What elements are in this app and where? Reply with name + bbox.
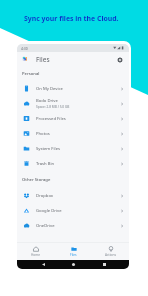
staticText: Photos	[36, 131, 50, 137]
staticText: Actions	[105, 253, 116, 257]
button[interactable]: Trash Bin	[17, 156, 129, 171]
staticText: Files	[36, 55, 50, 64]
button[interactable]: Settings	[115, 55, 124, 64]
staticText: OneDrive	[36, 223, 55, 229]
staticText: Processed Files	[36, 116, 66, 122]
staticText: Other Storage	[22, 177, 51, 183]
staticText: System Files	[36, 146, 61, 152]
staticText: Google Drive	[36, 208, 62, 214]
button[interactable]: Bodo Drive	[17, 96, 129, 111]
button[interactable]: Dropbox	[17, 188, 129, 203]
button[interactable]: OneDrive	[17, 218, 129, 233]
staticText: On My Device	[36, 86, 63, 92]
button[interactable]: Recent apps	[99, 260, 109, 269]
button[interactable]: Processed Files	[17, 111, 129, 126]
button[interactable]: Back	[38, 260, 48, 269]
staticText: 4:30	[21, 46, 28, 51]
button[interactable]: Photos	[17, 126, 129, 141]
staticText: Dropbox	[36, 193, 54, 199]
staticText: Space: 2.8 MB / 5.0 GB	[36, 105, 70, 109]
button[interactable]: Home	[17, 242, 55, 260]
button[interactable]: System Files	[17, 141, 129, 156]
button[interactable]: Actions	[92, 242, 129, 260]
staticText: Personal	[22, 71, 40, 77]
staticText: Home	[31, 253, 41, 257]
staticText: Trash Bin	[36, 161, 55, 167]
button[interactable]: Files	[55, 242, 92, 260]
button[interactable]: On My Device	[17, 81, 129, 96]
staticText: Sync your files in the Cloud.	[24, 14, 119, 23]
staticText: Bodo Drive	[36, 98, 58, 104]
staticText: Files	[70, 253, 77, 257]
button[interactable]: Home	[68, 260, 78, 269]
button[interactable]: Google Drive	[17, 203, 129, 218]
